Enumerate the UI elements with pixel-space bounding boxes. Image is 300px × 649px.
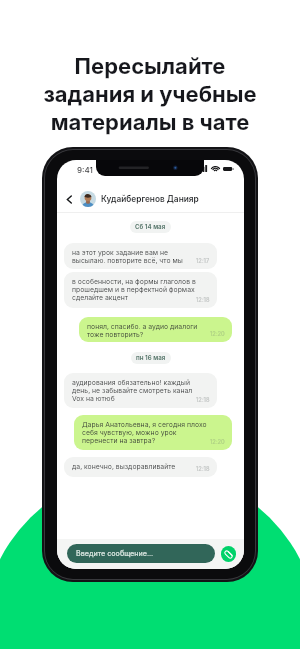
button[interactable]: Дарья Анатольевна, я сегодня плохо себя … [74, 415, 232, 450]
button[interactable]: аудирования обязательно! каждый день, не… [64, 373, 217, 408]
button[interactable]: Сб 14 мая [130, 221, 171, 233]
staticText: Сб 14 мая [135, 223, 166, 231]
staticText: пн 16 мая [136, 354, 166, 362]
staticText: понял, спасибо. а аудио диалоги тоже пов… [87, 322, 198, 338]
staticText: 12:20 [210, 330, 225, 337]
staticText: на этот урок задание вам не высылаю. пов… [72, 248, 183, 264]
staticText: 9:41 [77, 165, 93, 175]
button[interactable]: понял, спасибо. а аудио диалоги тоже пов… [79, 317, 232, 342]
staticText: Дарья Анатольевна, я сегодня плохо себя … [82, 420, 207, 444]
staticText: 12:20 [210, 438, 225, 445]
staticText: 12:18 [196, 396, 210, 403]
button[interactable]: Back [61, 191, 78, 208]
button[interactable]: пн 16 мая [131, 352, 171, 364]
staticText: Пересылайте задания и учебные материалы … [0, 53, 300, 136]
staticText: Введите сообщение... [76, 549, 154, 558]
staticText: аудирования обязательно! каждый день, не… [72, 378, 193, 402]
staticText: 12:17 [196, 257, 210, 264]
button[interactable]: да, конечно, выздоравливайте [64, 457, 217, 477]
button[interactable]: Введите сообщение... [67, 544, 215, 563]
button[interactable]: Attach file [221, 546, 236, 562]
button[interactable]: на этот урок задание вам не высылаю. пов… [64, 243, 217, 269]
button[interactable]: в особенности, на формы глаголов в проше… [64, 272, 217, 308]
staticText: да, конечно, выздоравливайте [72, 462, 176, 470]
button[interactable]: Back [57, 186, 244, 212]
staticText: в особенности, на формы глаголов в проше… [72, 277, 196, 301]
staticText: 12:18 [196, 465, 210, 472]
staticText: 12:18 [196, 296, 210, 303]
staticText: Кудайбергенов Данияр [101, 194, 199, 204]
